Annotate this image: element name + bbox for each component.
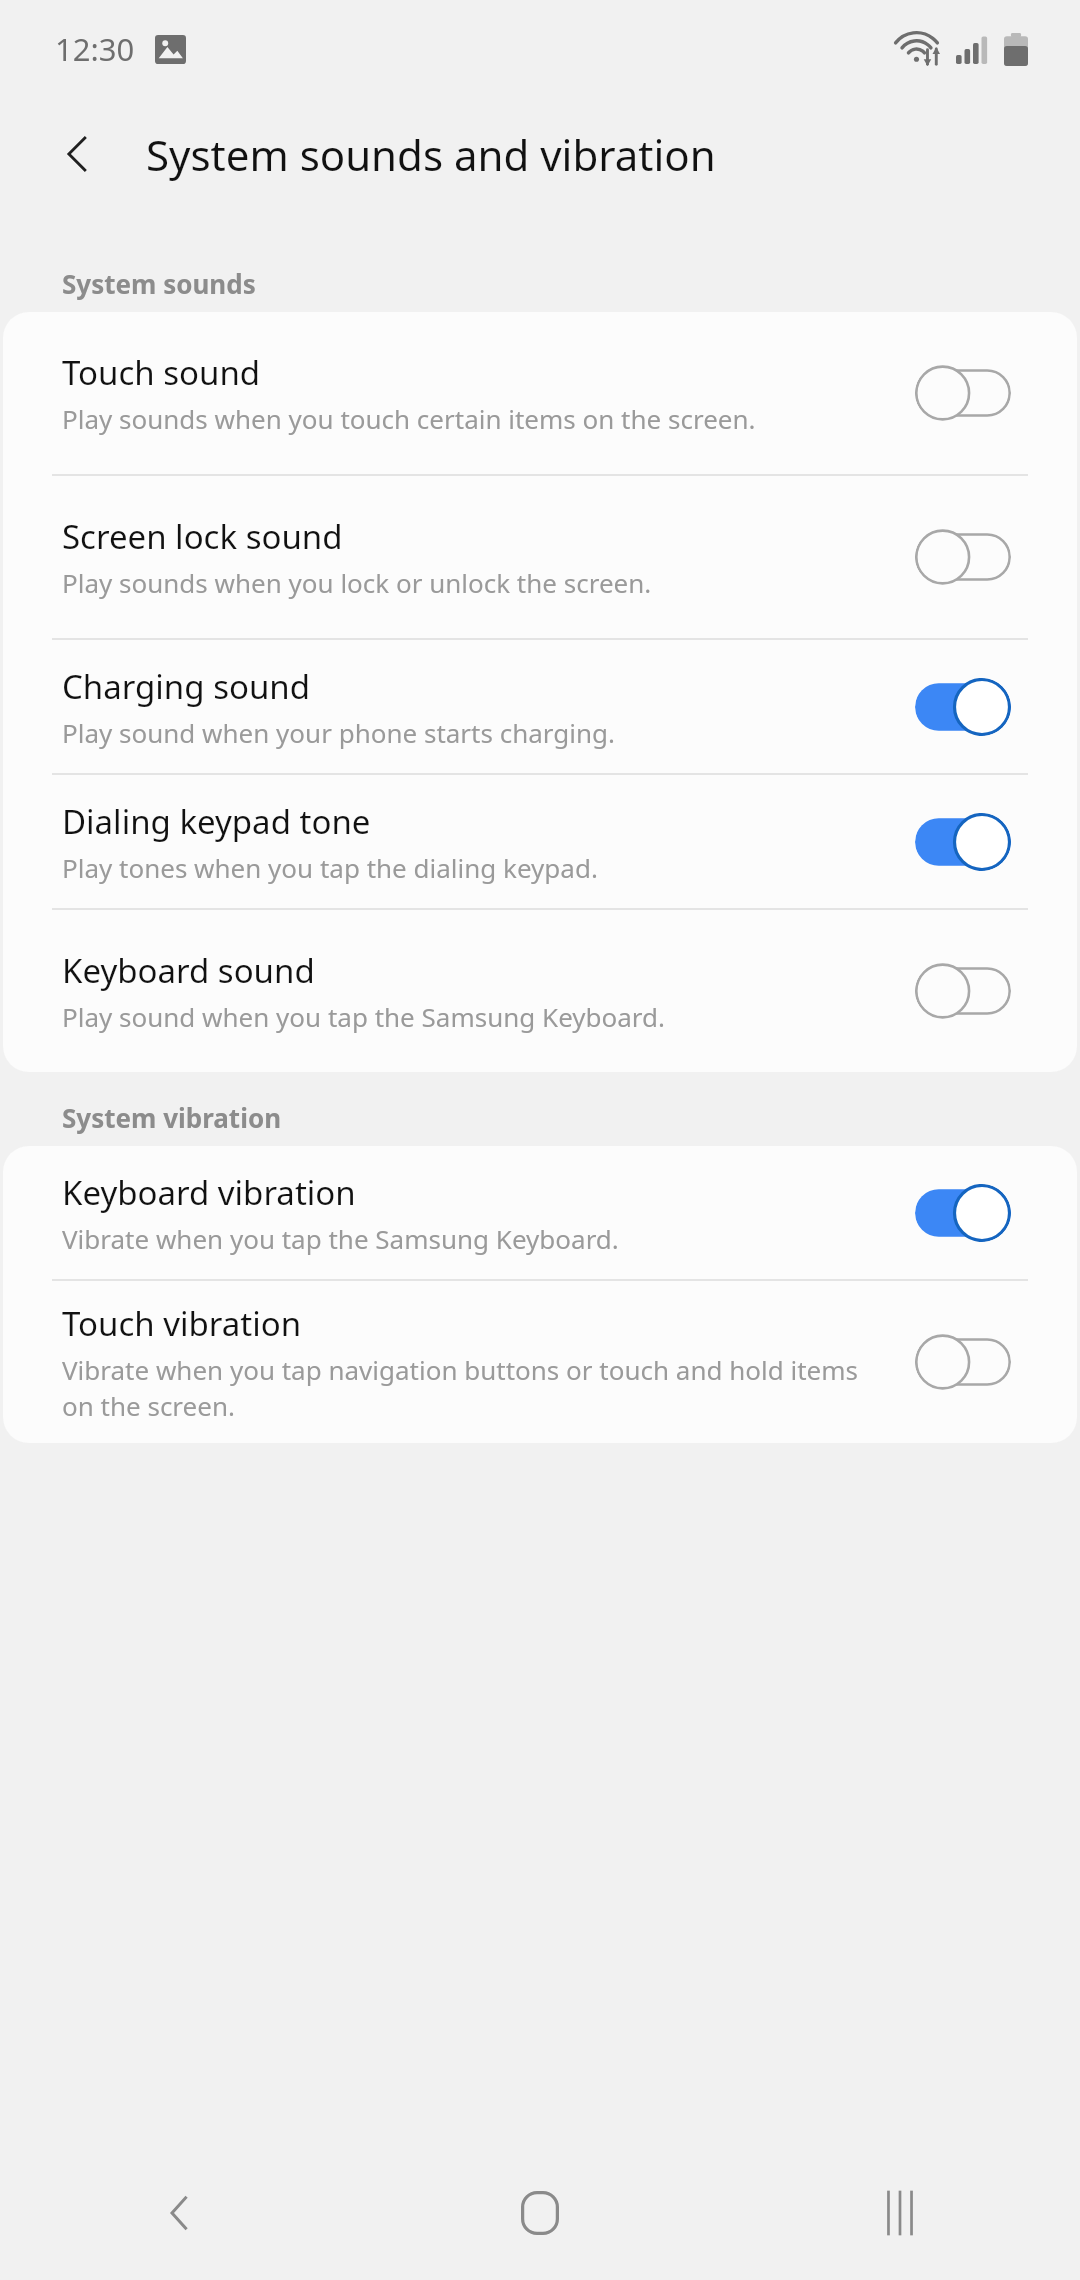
button[interactable]: Touch vibration off (915, 1333, 1011, 1391)
button[interactable]: Keyboard sound off (915, 962, 1011, 1020)
staticText: Keyboard vibration (62, 1170, 356, 1215)
button[interactable]: Touch sound off (915, 364, 1011, 422)
button[interactable]: Screen lock sound (3, 476, 1077, 638)
button[interactable]: Back (0, 2146, 360, 2280)
button[interactable]: Keyboard vibration (3, 1146, 1077, 1279)
staticText: Touch sound (62, 350, 261, 395)
staticText: Charging sound (62, 664, 310, 709)
button[interactable]: Keyboard sound (3, 910, 1077, 1072)
staticText: Keyboard sound (62, 948, 315, 993)
button[interactable]: Charging sound on (915, 678, 1011, 736)
button[interactable]: Charging sound (3, 640, 1077, 773)
button[interactable]: Back (40, 116, 116, 192)
button[interactable]: Touch sound (3, 312, 1077, 474)
staticText: 12:30 (55, 28, 135, 70)
staticText: Dialing keypad tone (62, 799, 371, 844)
button[interactable]: Recent apps (720, 2146, 1080, 2280)
staticText: Vibrate when you tap the Samsung Keyboar… (62, 1221, 619, 1256)
button[interactable]: Touch vibration (3, 1281, 1077, 1443)
staticText: Screen lock sound (62, 514, 343, 559)
staticText: Vibrate when you tap navigation buttons … (62, 1352, 895, 1424)
staticText: System vibration (62, 1100, 282, 1135)
staticText: Play sounds when you lock or unlock the … (62, 565, 652, 600)
staticText: Play tones when you tap the dialing keyp… (62, 850, 598, 885)
button[interactable]: Keyboard vibration on (915, 1184, 1011, 1242)
staticText: System sounds and vibration (146, 126, 716, 183)
button[interactable]: Screen lock sound off (915, 528, 1011, 586)
button[interactable]: Dialing keypad tone (3, 775, 1077, 908)
staticText: System sounds (62, 266, 256, 301)
staticText: Play sounds when you touch certain items… (62, 401, 756, 436)
staticText: Touch vibration (62, 1301, 302, 1346)
staticText: Play sound when you tap the Samsung Keyb… (62, 999, 666, 1034)
button[interactable]: Home (360, 2146, 720, 2280)
staticText: Play sound when your phone starts chargi… (62, 715, 616, 750)
button[interactable]: Dialing keypad tone on (915, 813, 1011, 871)
